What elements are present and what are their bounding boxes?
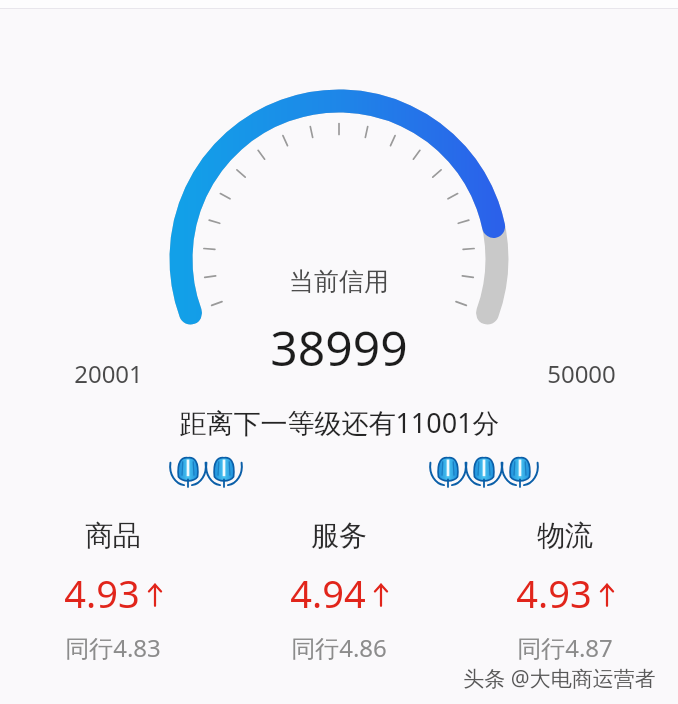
other: Crown level badge xyxy=(168,452,208,488)
button[interactable]: 物流 xyxy=(452,518,678,664)
staticText: 4.93 xyxy=(64,567,140,619)
staticText: 头条 @大电商运营者 xyxy=(463,664,656,690)
staticText: 商品 xyxy=(85,518,141,553)
staticText: 距离下一等级还有11001分 xyxy=(179,404,500,441)
staticText: 38999 xyxy=(270,315,408,380)
staticText: 服务 xyxy=(311,518,367,553)
staticText: 当前信用 xyxy=(289,266,389,297)
staticText: 4.93 xyxy=(516,567,592,619)
button[interactable]: 商品 xyxy=(0,518,226,664)
button[interactable]: 距离下一等级还有11001分 xyxy=(0,404,678,441)
staticText: 50000 xyxy=(547,357,616,390)
staticText: 20001 xyxy=(74,357,143,390)
other: Crown level badge xyxy=(428,452,468,488)
staticText: 物流 xyxy=(537,518,593,553)
staticText: 同行4.86 xyxy=(291,631,387,664)
other: Crown level badge xyxy=(464,452,504,488)
other: Crown level badge xyxy=(500,452,540,488)
staticText: 4.94 xyxy=(290,567,366,619)
other: Crown level badge xyxy=(204,452,244,488)
button[interactable]: 服务 xyxy=(226,518,452,664)
staticText: 同行4.83 xyxy=(65,631,161,664)
staticText: 同行4.87 xyxy=(517,631,613,664)
